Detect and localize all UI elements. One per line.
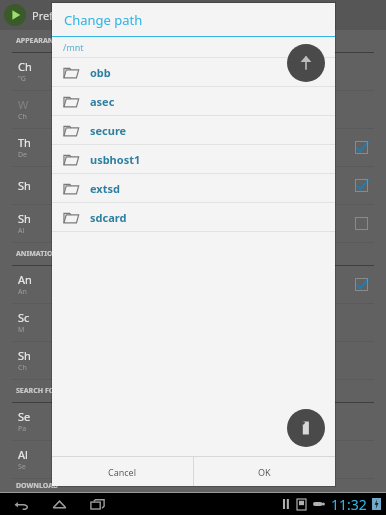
staticText: usbhost1 <box>90 152 141 167</box>
staticText: Se <box>18 409 31 424</box>
button[interactable]: Sh <box>0 167 386 204</box>
staticText: Sc <box>18 310 30 325</box>
staticText: asec <box>90 94 115 109</box>
button[interactable]: obb <box>52 58 335 86</box>
staticText: "G <box>18 74 26 84</box>
button[interactable]: An <box>0 266 386 303</box>
staticText: An <box>18 272 32 287</box>
staticText: 11:32 <box>331 495 367 514</box>
staticText: sdcard <box>90 210 127 225</box>
button[interactable]: Back <box>10 493 32 515</box>
button[interactable]: secure <box>52 116 335 144</box>
staticText: Sh <box>18 211 31 226</box>
button[interactable]: Sh <box>0 342 386 379</box>
button[interactable]: Storage <box>287 409 325 447</box>
staticText: Th <box>18 135 31 150</box>
button[interactable]: W <box>0 91 386 128</box>
staticText: Ch <box>18 112 27 122</box>
staticText: APPEARANCE <box>16 36 62 46</box>
staticText: ANIMATION <box>16 249 59 259</box>
staticText: Pa <box>18 424 27 434</box>
staticText: secure <box>90 123 127 138</box>
staticText: De <box>18 150 28 160</box>
staticText: Sh <box>18 178 31 193</box>
staticText: M <box>18 325 25 335</box>
button[interactable]: Th <box>0 129 386 166</box>
staticText: Al <box>18 226 25 236</box>
button[interactable]: Recents <box>86 493 108 515</box>
button[interactable]: Se <box>0 403 386 440</box>
staticText: /mnt <box>63 41 84 53</box>
staticText: OK <box>258 466 271 478</box>
staticText: Al <box>18 447 28 462</box>
staticText: Prefer <box>32 8 64 23</box>
staticText: Sh <box>18 348 31 363</box>
button[interactable]: asec <box>52 87 335 115</box>
button[interactable]: Cancel <box>52 457 193 486</box>
button[interactable]: extsd <box>52 174 335 202</box>
button[interactable]: usbhost1 <box>52 145 335 173</box>
staticText: W <box>18 97 29 112</box>
button[interactable]: Sc <box>0 304 386 341</box>
button[interactable]: Home <box>48 493 70 515</box>
staticText: Se <box>18 462 26 472</box>
staticText: obb <box>90 65 111 80</box>
staticText: extsd <box>90 181 120 196</box>
staticText: An <box>18 287 27 297</box>
button[interactable]: Ch <box>0 53 386 90</box>
staticText: Ch <box>18 363 27 373</box>
staticText: Cancel <box>108 466 137 478</box>
button[interactable]: sdcard <box>52 203 335 231</box>
staticText: Change path <box>64 11 143 29</box>
staticText: Ch <box>18 59 32 74</box>
button[interactable]: Al <box>0 441 386 478</box>
button[interactable]: OK <box>194 457 335 486</box>
staticText: SEARCH FO <box>16 386 55 396</box>
button[interactable]: Sh <box>0 205 386 242</box>
button[interactable]: Go up one folder <box>287 44 325 82</box>
staticText: DOWNLOAD <box>16 481 59 491</box>
